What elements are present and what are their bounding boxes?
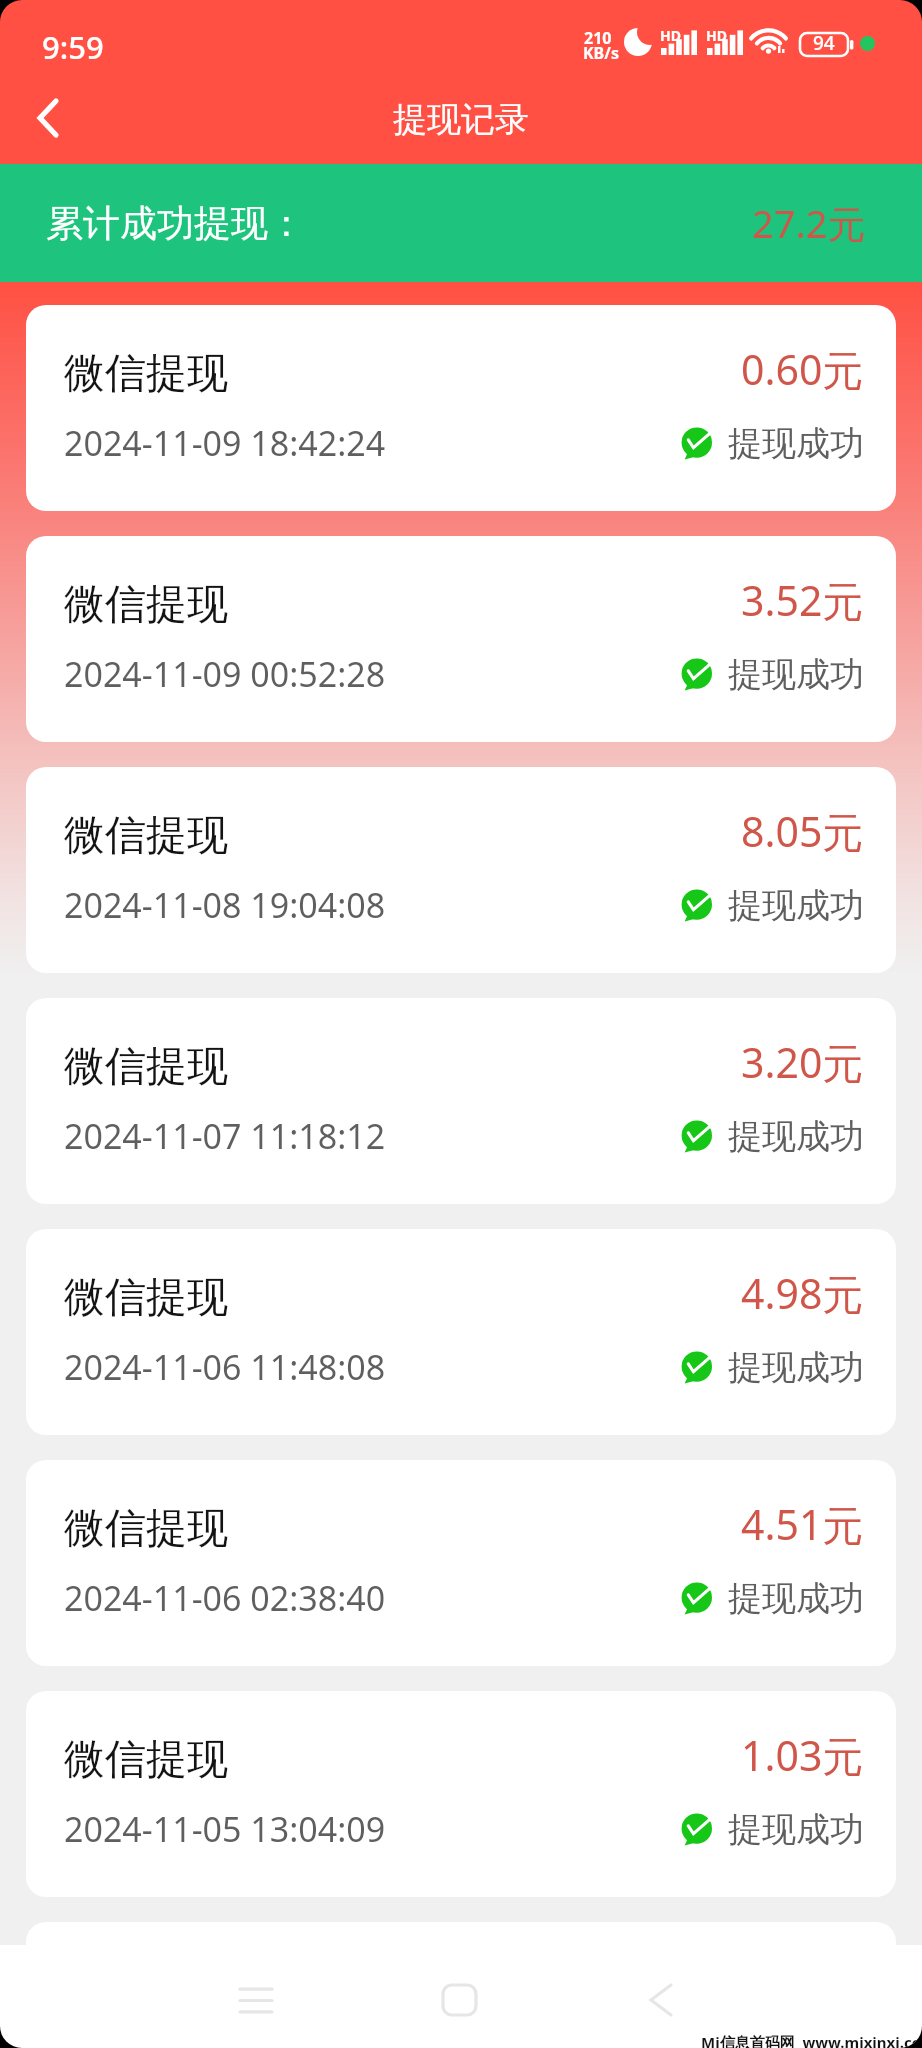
staticText: Mi信息首码网 www.mixinxi.com	[701, 2032, 922, 2048]
button[interactable]: 微信提现	[26, 1460, 896, 1666]
staticText: 提现成功	[728, 1115, 864, 1158]
button[interactable]: 微信提现	[26, 1691, 896, 1897]
button[interactable]: 微信提现	[26, 536, 896, 742]
staticText: 微信提现	[64, 348, 228, 400]
button[interactable]: 微信提现	[26, 1229, 896, 1435]
staticText: 27.2元	[752, 197, 866, 249]
staticText: 2024-11-06 11:48:08	[64, 1344, 386, 1390]
staticText: 2024-11-07 11:18:12	[64, 1113, 386, 1159]
staticText: 2024-11-05 13:04:09	[64, 1806, 386, 1852]
staticText: 提现成功	[728, 653, 864, 696]
staticText: 1.03元	[741, 1727, 864, 1783]
staticText: 提现成功	[728, 1346, 864, 1389]
staticText: 9:59	[42, 26, 104, 68]
staticText: 微信提现	[64, 1041, 228, 1093]
staticText: 2024-11-09 00:52:28	[64, 651, 386, 697]
staticText: 2024-11-09 18:42:24	[64, 420, 386, 466]
staticText: 4.98元	[741, 1265, 864, 1321]
staticText: HD	[706, 26, 727, 45]
button[interactable]: 微信提现	[26, 998, 896, 1204]
staticText: 微信提现	[64, 1272, 228, 1324]
staticText: 累计成功提现：	[46, 200, 305, 247]
staticText: 3.52元	[741, 572, 864, 628]
button[interactable]: 微信提现	[26, 305, 896, 511]
staticText: 8.05元	[741, 803, 864, 859]
staticText: 提现成功	[728, 1577, 864, 1620]
button[interactable]: 微信提现	[26, 767, 896, 973]
staticText: 提现记录	[393, 98, 529, 141]
staticText: 提现成功	[728, 422, 864, 465]
staticText: 微信提现	[64, 1734, 228, 1786]
button[interactable]: Back	[10, 80, 86, 156]
staticText: 0.60元	[741, 341, 864, 397]
staticText: 4.51元	[741, 1496, 864, 1552]
button[interactable]: Back	[621, 1960, 701, 2040]
staticText: 微信提现	[64, 810, 228, 862]
staticText: 3.20元	[741, 1034, 864, 1090]
staticText: 2024-11-06 02:38:40	[64, 1575, 386, 1621]
staticText: 微信提现	[64, 579, 228, 631]
staticText: 微信提现	[64, 1503, 228, 1555]
staticText: 2024-11-08 19:04:08	[64, 882, 386, 928]
staticText: HD	[660, 26, 681, 45]
button[interactable]: Recent apps	[216, 1960, 296, 2040]
staticText: KB/s	[583, 42, 619, 64]
staticText: 210	[584, 27, 612, 49]
button[interactable]: Home	[419, 1960, 499, 2040]
staticText: 提现成功	[728, 884, 864, 927]
staticText: 94	[813, 30, 835, 56]
staticText: 提现成功	[728, 1808, 864, 1851]
